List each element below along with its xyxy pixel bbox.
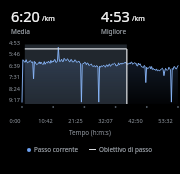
staticText: 6:20 xyxy=(11,6,40,26)
staticText: 21:25 xyxy=(68,117,83,125)
staticText: /km xyxy=(42,14,55,24)
staticText: 7:31 xyxy=(8,73,20,81)
staticText: Passo corrente xyxy=(34,145,78,154)
staticText: 42:50 xyxy=(128,117,143,125)
staticText: 8:24 xyxy=(8,85,20,93)
staticText: /km xyxy=(132,14,145,24)
staticText: 9:17 xyxy=(8,96,20,104)
staticText: 4:53 xyxy=(101,6,130,26)
button[interactable]: Passo corrente xyxy=(27,145,78,154)
staticText: 0:00 xyxy=(9,117,21,125)
button[interactable]: 4:53 xyxy=(0,38,180,126)
staticText: 6:39 xyxy=(8,62,20,70)
staticText: Tempo (h:m:s) xyxy=(69,128,111,137)
staticText: 4:53 xyxy=(8,39,20,47)
button[interactable]: Obiettivo di passo xyxy=(89,145,153,154)
staticText: Migliore xyxy=(101,27,127,36)
staticText: 32:07 xyxy=(98,117,113,125)
staticText: Media xyxy=(11,27,30,36)
staticText: 5:46 xyxy=(8,50,20,58)
staticText: 10:42 xyxy=(38,117,53,125)
button[interactable]: 6:20 xyxy=(0,6,90,36)
staticText: 53:32 xyxy=(158,117,173,125)
button[interactable]: 4:53 xyxy=(90,6,180,36)
staticText: Obiettivo di passo xyxy=(99,145,153,154)
